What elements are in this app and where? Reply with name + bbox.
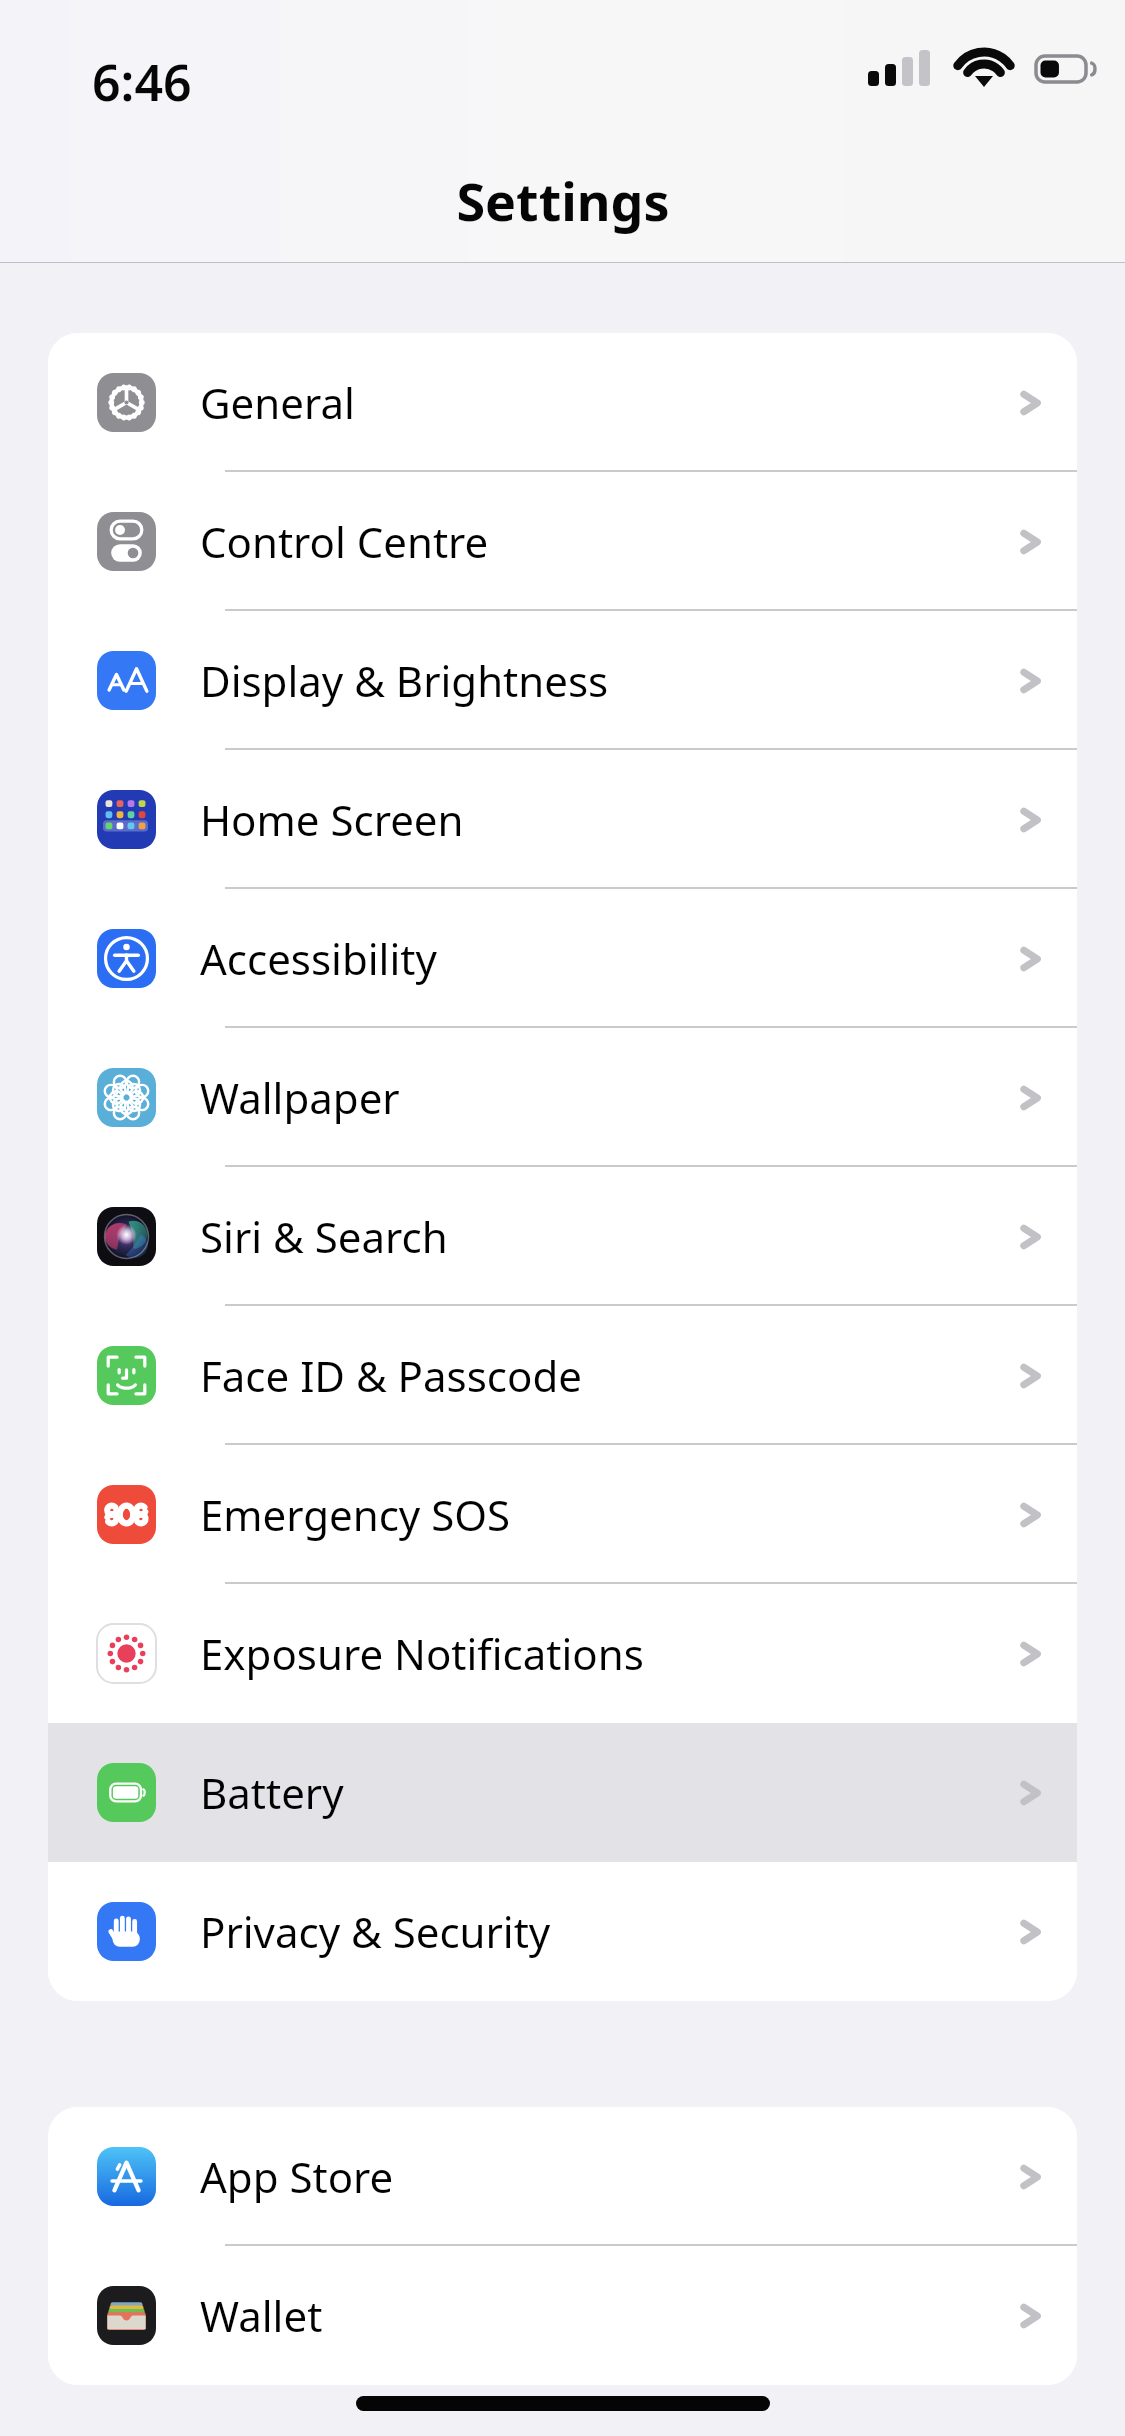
staticText: Control Centre (200, 513, 489, 570)
staticText: General (200, 374, 355, 431)
staticText: Accessibility (200, 930, 437, 987)
staticText: 6:46 (92, 48, 192, 116)
staticText: Face ID & Passcode (200, 1347, 582, 1404)
button[interactable]: Face ID & Passcode (48, 1306, 1077, 1445)
staticText: Display & Brightness (200, 652, 609, 709)
button[interactable]: Siri & Search (48, 1167, 1077, 1306)
staticText: App Store (200, 2148, 394, 2205)
button[interactable]: General (48, 333, 1077, 472)
staticText: Wallet (200, 2287, 323, 2344)
button[interactable]: Wallet (48, 2246, 1077, 2385)
button[interactable]: Home Screen (48, 750, 1077, 889)
staticText: Exposure Notifications (200, 1625, 644, 1682)
button[interactable]: Display & Brightness (48, 611, 1077, 750)
staticText: Privacy & Security (200, 1903, 551, 1960)
button[interactable]: Accessibility (48, 889, 1077, 1028)
button[interactable]: Battery (48, 1723, 1077, 1862)
staticText: Wallpaper (200, 1069, 400, 1126)
button[interactable]: Wallpaper (48, 1028, 1077, 1167)
button[interactable]: Exposure Notifications (48, 1584, 1077, 1723)
staticText: Settings (456, 165, 670, 236)
staticText: Siri & Search (200, 1208, 448, 1265)
staticText: Home Screen (200, 791, 464, 848)
staticText: Emergency SOS (200, 1486, 511, 1543)
button[interactable]: Control Centre (48, 472, 1077, 611)
button[interactable]: App Store (48, 2107, 1077, 2246)
button[interactable]: Emergency SOS (48, 1445, 1077, 1584)
button[interactable]: Privacy & Security (48, 1862, 1077, 2001)
staticText: Battery (200, 1764, 344, 1821)
